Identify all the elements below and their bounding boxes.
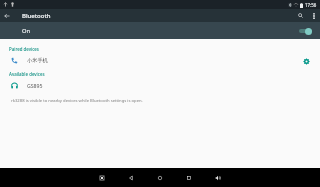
button[interactable]: Device settings xyxy=(300,55,312,67)
button[interactable]: On xyxy=(0,22,320,39)
staticText: 17:56 xyxy=(305,2,317,8)
staticText: 小米手机 xyxy=(27,57,48,64)
button[interactable]: More options xyxy=(307,9,320,22)
button[interactable]: Navigate up xyxy=(0,9,13,22)
staticText: Paired devices xyxy=(9,46,39,52)
button[interactable]: Recents xyxy=(182,168,196,187)
button[interactable]: Back xyxy=(124,168,138,187)
button[interactable]: Volume xyxy=(211,168,225,187)
staticText: Bluetooth xyxy=(22,12,51,20)
staticText: GS895 xyxy=(27,82,43,89)
button[interactable]: GS895 xyxy=(0,78,320,93)
button[interactable]: Screenshot xyxy=(95,168,109,187)
button[interactable]: Search xyxy=(294,9,307,22)
staticText: On xyxy=(22,27,31,35)
staticText: Available devices xyxy=(9,71,45,77)
button[interactable]: 小米手机 xyxy=(0,53,320,68)
staticText: rk3288 is visible to nearby devices whil… xyxy=(11,98,143,104)
button[interactable]: Home xyxy=(153,168,167,187)
